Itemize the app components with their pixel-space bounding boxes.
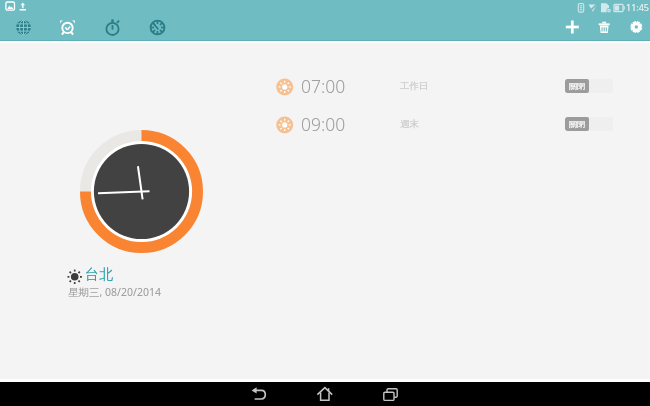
button[interactable]: Home (301, 382, 349, 406)
staticText: 關閉 (569, 81, 585, 91)
button[interactable]: Settings (618, 9, 650, 45)
button[interactable]: Timer (138, 9, 176, 45)
button[interactable]: Alarm enabled toggle, off (565, 79, 613, 93)
button[interactable]: Alarm (48, 9, 86, 45)
button[interactable]: World clock (4, 9, 42, 45)
button[interactable]: Delete alarm (586, 9, 622, 45)
button[interactable]: 09:00 (258, 107, 650, 145)
button[interactable]: Add alarm (554, 9, 590, 45)
button[interactable]: Stopwatch (93, 9, 131, 45)
button[interactable]: 台北 (85, 266, 113, 284)
staticText: 11:45 (626, 1, 650, 13)
button[interactable]: Back (236, 382, 284, 406)
staticText: 工作日 (400, 80, 429, 92)
staticText: 關閉 (569, 119, 585, 129)
staticText: 09:00 (301, 112, 346, 136)
staticText: 07:00 (301, 74, 346, 98)
button[interactable]: 07:00 (258, 69, 650, 107)
button[interactable]: Alarm enabled toggle, off (565, 117, 613, 131)
button[interactable]: Recent apps (366, 382, 414, 406)
staticText: 週末 (400, 118, 419, 130)
staticText: 星期三, 08/20/2014 (68, 285, 161, 299)
button[interactable]: Taipei clock (80, 130, 203, 253)
